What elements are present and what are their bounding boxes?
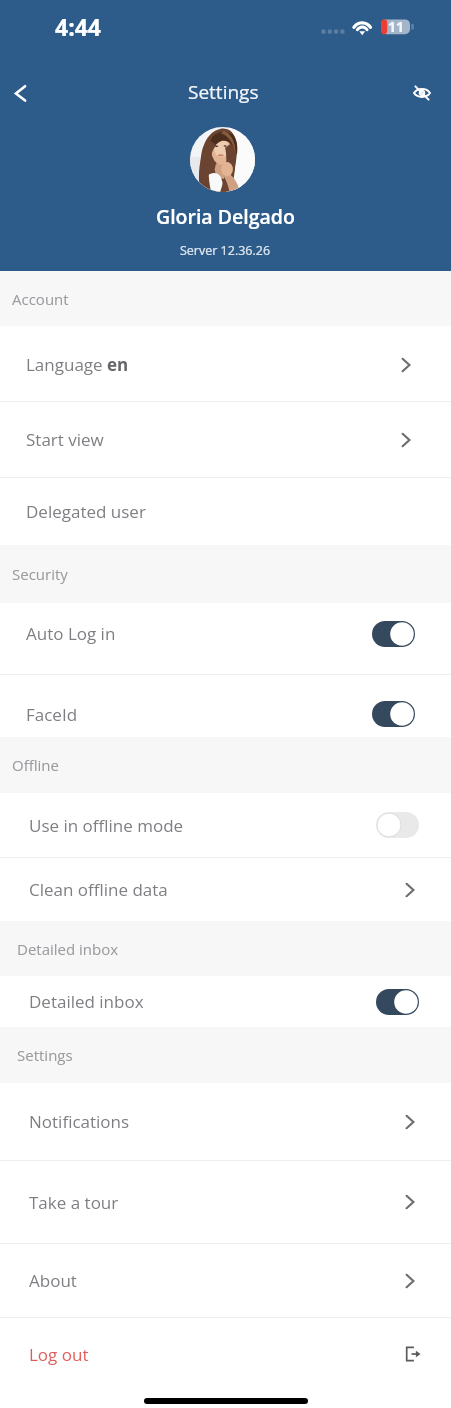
staticText: Security (12, 564, 68, 584)
button[interactable]: Hide details (401, 72, 443, 114)
staticText: Start view (26, 428, 104, 451)
staticText: Settings (188, 79, 259, 105)
button[interactable]: Notifications (0, 1083, 451, 1160)
staticText: Notifications (29, 1110, 130, 1133)
button[interactable]: Auto Log in (0, 603, 451, 674)
staticText: Use in offline mode (29, 814, 184, 837)
button[interactable]: Language en (0, 326, 451, 401)
staticText: Auto Log in (26, 622, 116, 645)
staticText: About (29, 1269, 77, 1292)
staticText: Gloria Delgado (156, 203, 295, 230)
button[interactable]: Take a tour (0, 1161, 451, 1243)
staticText: FaceId (26, 703, 78, 726)
button[interactable]: Clean offline data (0, 858, 451, 921)
button[interactable]: Use in offline mode (0, 793, 451, 857)
button[interactable]: Delegated user (0, 478, 451, 545)
staticText: Detailed inbox (29, 990, 144, 1013)
staticText: Delegated user (26, 500, 146, 523)
button[interactable]: Back (0, 72, 42, 114)
button[interactable]: Log out (0, 1318, 451, 1390)
staticText: Language en (26, 353, 129, 376)
button[interactable]: About (0, 1244, 451, 1317)
staticText: 11 (388, 17, 405, 36)
staticText: 4:44 (55, 11, 102, 42)
staticText: Account (12, 289, 69, 309)
staticText: Log out (29, 1343, 89, 1366)
staticText: Take a tour (29, 1191, 119, 1214)
staticText: Offline (12, 755, 59, 775)
staticText: Settings (17, 1045, 73, 1065)
staticText: Clean offline data (29, 878, 168, 901)
button[interactable]: Detailed inbox (0, 976, 451, 1027)
other: Log out (404, 1345, 422, 1363)
staticText: Server 12.36.26 (180, 242, 271, 259)
button[interactable]: FaceId (0, 675, 451, 737)
staticText: Detailed inbox (17, 939, 119, 959)
button[interactable]: Start view (0, 402, 451, 477)
